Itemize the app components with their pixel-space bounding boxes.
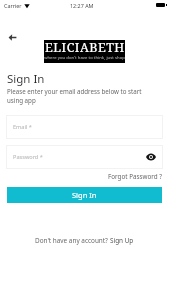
staticText: Sign In bbox=[7, 71, 45, 87]
staticText: Please enter your email address below to… bbox=[7, 87, 142, 105]
button[interactable]: Password * bbox=[6, 145, 163, 169]
staticText: Sign Up bbox=[110, 236, 134, 245]
staticText: where you don't have to think, just shop bbox=[44, 55, 125, 61]
button[interactable]: Don't have any account? bbox=[32, 233, 137, 248]
button[interactable]: Sign In bbox=[7, 187, 162, 203]
staticText: Password * bbox=[13, 153, 43, 161]
button[interactable]: Forgot Password ? bbox=[108, 172, 163, 181]
staticText: Don't have any account? bbox=[35, 236, 110, 245]
staticText: Sign In bbox=[72, 190, 97, 200]
staticText: Carrier bbox=[4, 2, 22, 9]
button[interactable]: Email * bbox=[6, 115, 163, 139]
button[interactable]: Show password bbox=[145, 151, 157, 163]
staticText: Forgot Password ? bbox=[108, 172, 163, 181]
staticText: 12:27 AM bbox=[70, 2, 94, 9]
staticText: Email * bbox=[13, 123, 32, 131]
staticText: ELICIABETH bbox=[45, 40, 125, 56]
button[interactable]: Back bbox=[2, 27, 23, 48]
